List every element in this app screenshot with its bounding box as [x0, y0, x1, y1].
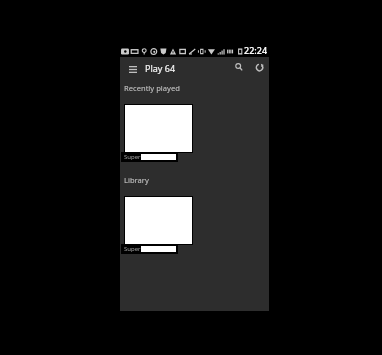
button[interactable]: Refresh	[251, 59, 267, 75]
staticText: Play 64	[145, 62, 176, 74]
button[interactable]: Search	[231, 59, 247, 75]
staticText: Recently played	[124, 83, 180, 93]
button[interactable]: Super	[121, 152, 178, 162]
staticText: 22:24	[244, 44, 268, 56]
button[interactable]: Super	[121, 244, 178, 254]
staticText: Library	[124, 175, 149, 185]
button[interactable]: Open navigation menu	[124, 60, 142, 78]
staticText: Super	[124, 245, 141, 253]
staticText: Super	[124, 153, 141, 161]
